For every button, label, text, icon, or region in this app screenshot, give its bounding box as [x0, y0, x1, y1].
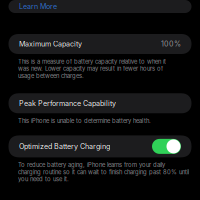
- staticText: 100%: [161, 40, 181, 48]
- button[interactable]: Learn More: [0, 0, 200, 13]
- staticText: Optimized Battery Charging: [19, 142, 110, 151]
- staticText: This iPhone is unable to determine batte…: [18, 117, 151, 124]
- staticText: Peak Performance Capability: [19, 99, 116, 108]
- staticText: Maximum Capacity: [19, 40, 82, 48]
- staticText: To reduce battery aging, iPhone learns f…: [18, 161, 189, 183]
- staticText: This is a measure of battery capacity re…: [18, 58, 166, 79]
- staticText: Learn More: [19, 2, 57, 11]
- button[interactable]: Peak Performance Capability: [0, 93, 200, 113]
- button[interactable]: Maximum Capacity: [0, 34, 200, 54]
- button[interactable]: Optimized Battery Charging: [0, 135, 200, 157]
